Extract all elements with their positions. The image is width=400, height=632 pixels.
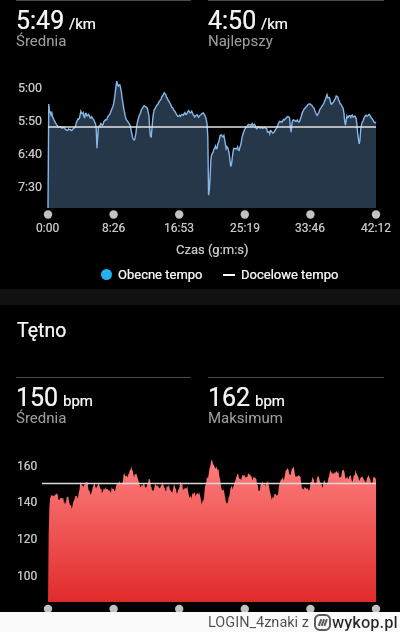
staticText: 100 [17,569,38,583]
staticText: 0:00 [36,221,60,235]
staticText: Obecne tempo [118,267,203,282]
staticText: Średnia [16,409,67,427]
button[interactable]: 5:49 [16,0,191,53]
staticText: 120 [17,532,38,546]
staticText: 5:49 [16,6,65,35]
staticText: 4:50 [208,6,257,35]
staticText: /km [69,15,96,33]
staticText: Najlepszy [208,32,273,50]
staticText: bpm [63,392,93,410]
staticText: 160 [17,459,38,473]
staticText: Średnia [16,32,67,50]
staticText: 8:26 [102,221,126,235]
staticText: bpm [255,392,285,410]
staticText: Docelowe tempo [241,267,339,282]
staticText: 16:53 [164,221,194,235]
staticText: Czas (g:m:s) [176,242,249,257]
staticText: LOGIN_4znaki z [208,614,309,631]
staticText: 5:50 [18,113,43,128]
button[interactable]: 150 [16,377,191,430]
staticText: Tętno [17,319,67,342]
button[interactable]: Docelowe tempo [223,267,339,282]
staticText: 150 [16,383,59,412]
staticText: 25:19 [230,221,260,235]
staticText: 6:40 [18,146,43,161]
staticText: 7:30 [18,179,43,194]
staticText: 5:00 [18,80,43,95]
staticText: wykop.pl [332,613,398,632]
staticText: 33:46 [295,221,325,235]
staticText: 162 [208,383,251,412]
staticText: 42:12 [361,221,391,235]
button[interactable]: 4:50 [208,0,384,53]
button[interactable]: Obecne tempo [101,267,203,282]
button[interactable]: 162 [208,377,384,430]
staticText: Maksimum [208,409,283,427]
staticText: /km [261,15,288,33]
staticText: 140 [17,495,38,509]
